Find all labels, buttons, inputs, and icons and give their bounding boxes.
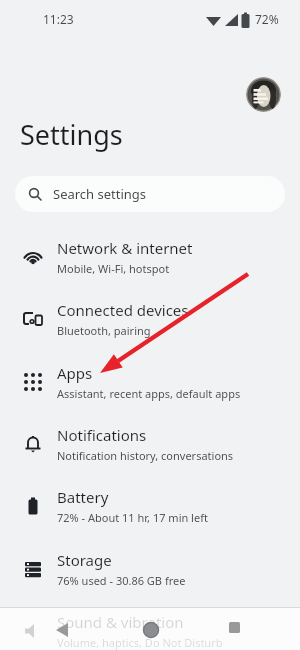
button[interactable]: Notifications xyxy=(0,413,300,475)
button[interactable]: Apps xyxy=(0,351,300,413)
button[interactable]: Sound & vibration xyxy=(0,600,300,650)
staticText: Storage xyxy=(57,550,112,570)
staticText: Mobile, Wi-Fi, hotspot xyxy=(57,261,170,276)
button[interactable]: Search settings xyxy=(15,176,285,212)
button[interactable]: Network & internet xyxy=(0,226,300,288)
button[interactable] xyxy=(246,77,281,112)
staticText: Bluetooth, pairing xyxy=(57,323,151,338)
staticText: 76% used - 30.86 GB free xyxy=(57,573,186,588)
staticText: 11:23 xyxy=(43,11,74,27)
button[interactable]: Connected devices xyxy=(0,288,300,350)
staticText: Battery xyxy=(57,487,109,507)
staticText: Apps xyxy=(57,363,93,383)
staticText: Assistant, recent apps, default apps xyxy=(57,386,241,401)
staticText: 72% - About 11 hr, 17 min left xyxy=(57,510,208,525)
button[interactable] xyxy=(136,614,166,644)
button[interactable] xyxy=(222,616,248,642)
staticText: Connected devices xyxy=(57,300,189,320)
staticText: Notification history, conversations xyxy=(57,448,234,463)
staticText: Network & internet xyxy=(57,238,193,258)
staticText: Volume, haptics, Do Not Disturb xyxy=(57,635,223,650)
staticText: Notifications xyxy=(57,425,147,445)
staticText: Sound & vibration xyxy=(57,612,184,632)
staticText: Search settings xyxy=(53,185,147,203)
button[interactable]: Battery xyxy=(0,475,300,537)
button[interactable]: Storage xyxy=(0,538,300,600)
staticText: 72% xyxy=(255,11,279,27)
staticText: Settings xyxy=(20,116,123,153)
button[interactable] xyxy=(48,616,76,644)
